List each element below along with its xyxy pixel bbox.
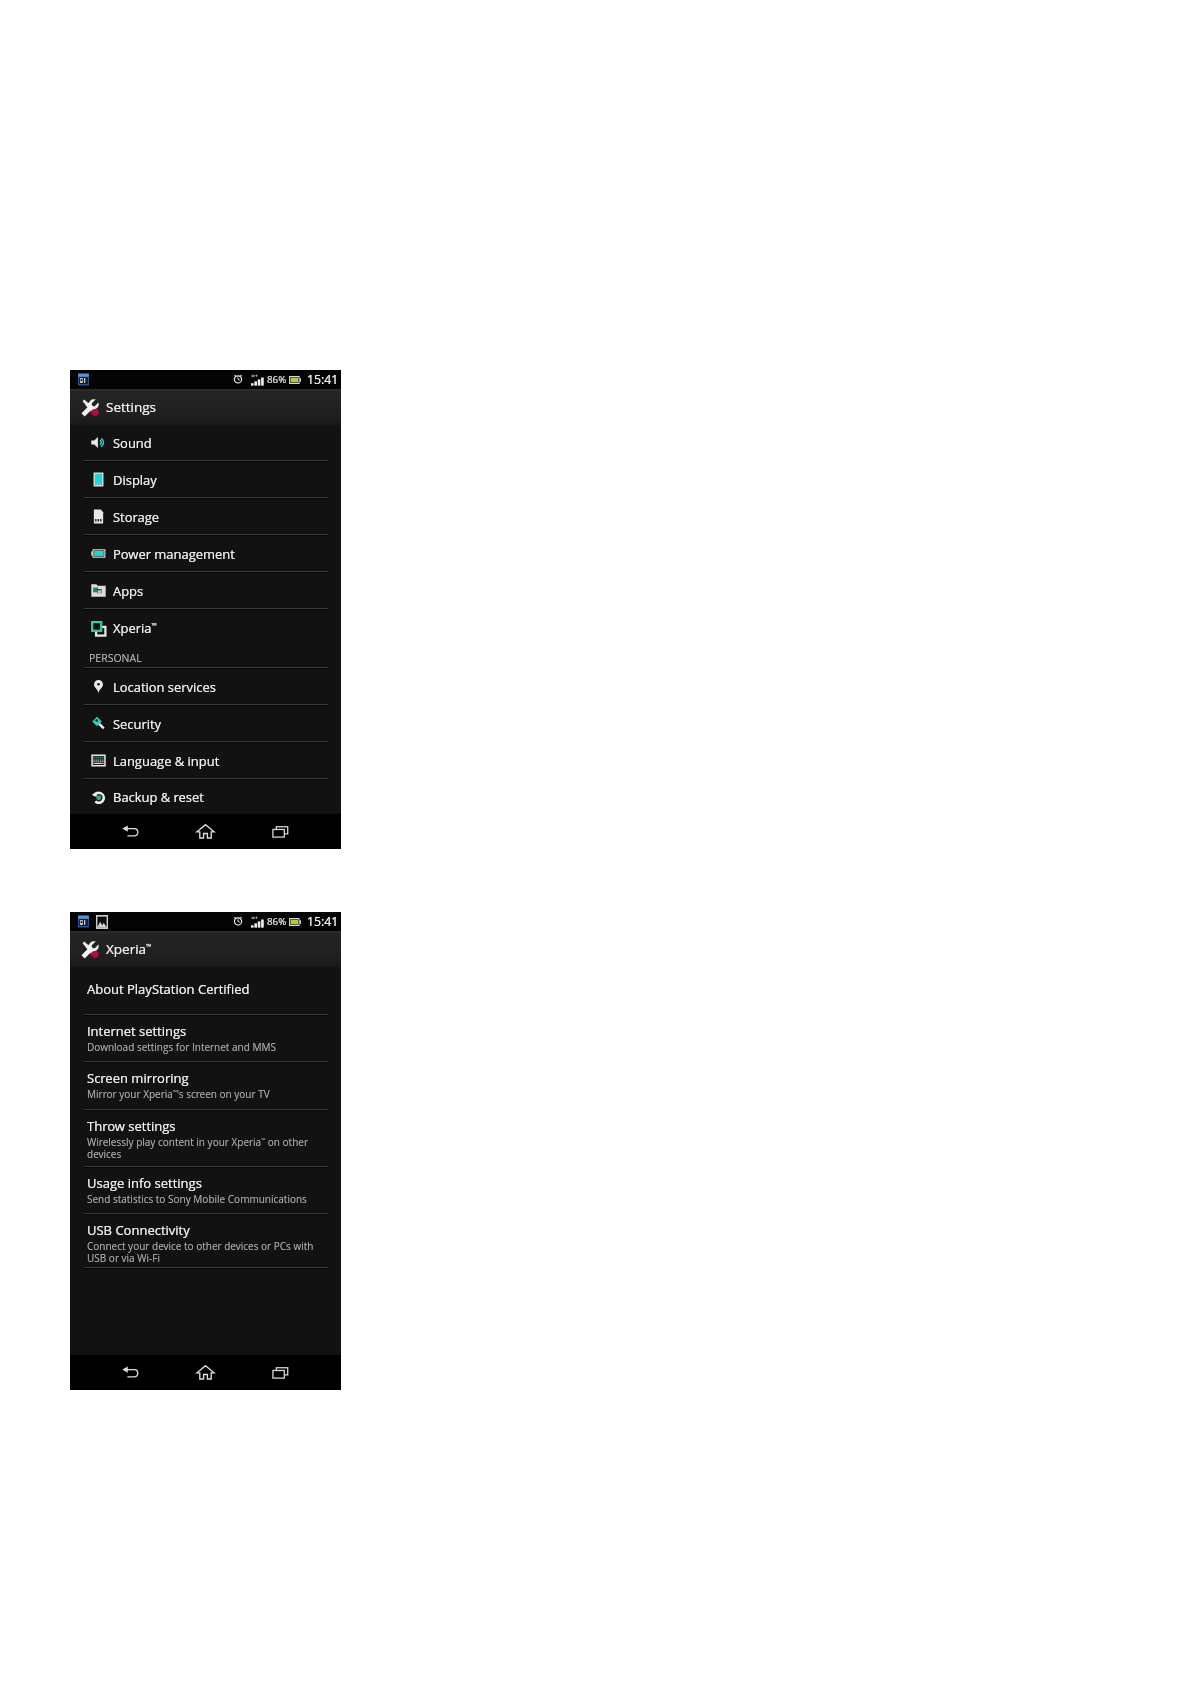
staticText: Usage info settings: [87, 1174, 202, 1192]
button[interactable]: Language & input: [70, 743, 341, 778]
button[interactable]: Screen mirroring: [70, 1063, 341, 1109]
staticText: Wirelessly play content in your Xperia™ …: [87, 1135, 327, 1161]
button[interactable]: Xperia™: [70, 931, 341, 967]
staticText: Settings: [106, 398, 157, 416]
button[interactable]: About PlayStation Certified: [70, 967, 341, 1014]
button[interactable]: Internet settings: [70, 1016, 341, 1061]
staticText: PERSONAL: [89, 651, 142, 665]
button[interactable]: Sound: [70, 425, 341, 460]
button[interactable]: Backup & reset: [70, 780, 341, 814]
staticText: Xperia™: [106, 940, 152, 958]
button[interactable]: Usage info settings: [70, 1168, 341, 1213]
staticText: Security: [113, 715, 162, 733]
staticText: Mirror your Xperia™'s screen on your TV: [87, 1087, 270, 1101]
staticText: Apps: [113, 582, 144, 600]
button[interactable]: Back: [93, 1355, 168, 1390]
button[interactable]: Recent apps: [243, 1355, 318, 1390]
staticText: 86%: [267, 373, 287, 386]
button[interactable]: Recent apps: [243, 814, 318, 849]
button[interactable]: Storage: [70, 499, 341, 534]
staticText: Power management: [113, 545, 235, 563]
button[interactable]: USB Connectivity: [70, 1215, 341, 1267]
staticText: Download settings for Internet and MMS: [87, 1040, 276, 1054]
button[interactable]: Settings: [70, 389, 341, 425]
staticText: Send statistics to Sony Mobile Communica…: [87, 1192, 307, 1206]
staticText: Throw settings: [87, 1117, 176, 1135]
staticText: Language & input: [113, 752, 220, 770]
button[interactable]: Home: [168, 1355, 243, 1390]
staticText: USB Connectivity: [87, 1221, 190, 1239]
button[interactable]: Location services: [70, 669, 341, 704]
staticText: Backup & reset: [113, 788, 204, 806]
staticText: About PlayStation Certified: [87, 980, 250, 998]
staticText: Xperia™: [113, 619, 157, 637]
staticText: 86%: [267, 915, 287, 928]
button[interactable]: Power management: [70, 536, 341, 571]
button[interactable]: Display: [70, 462, 341, 497]
staticText: Display: [113, 471, 157, 489]
staticText: Connect your device to other devices or …: [87, 1239, 327, 1265]
staticText: Screen mirroring: [87, 1069, 189, 1087]
button[interactable]: Throw settings: [70, 1111, 341, 1166]
staticText: Storage: [113, 508, 160, 526]
staticText: Sound: [113, 434, 152, 452]
button[interactable]: Home: [168, 814, 243, 849]
button[interactable]: Back: [93, 814, 168, 849]
button[interactable]: Xperia™: [70, 610, 341, 645]
staticText: Location services: [113, 678, 216, 696]
button[interactable]: Apps: [70, 573, 341, 608]
staticText: Internet settings: [87, 1022, 187, 1040]
staticText: 15:41: [307, 913, 339, 930]
staticText: 15:41: [307, 371, 339, 388]
button[interactable]: Security: [70, 706, 341, 741]
